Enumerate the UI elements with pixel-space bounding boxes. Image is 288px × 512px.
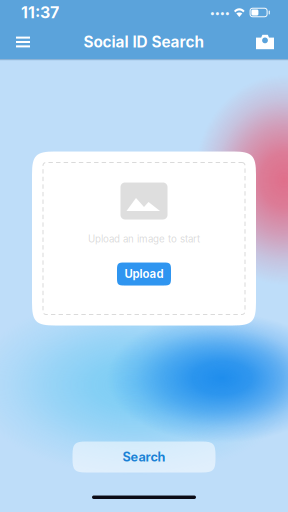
staticText: Search: [122, 449, 165, 465]
staticText: ••••: [210, 6, 230, 19]
button[interactable]: Search: [72, 441, 215, 472]
button[interactable]: Camera: [248, 25, 282, 59]
button[interactable]: Upload: [117, 262, 171, 285]
staticText: Social ID Search: [83, 33, 204, 51]
staticText: Upload: [124, 267, 163, 281]
staticText: 11:37: [21, 3, 59, 22]
staticText: Upload an image to start: [88, 233, 200, 245]
button[interactable]: Menu: [6, 25, 40, 59]
